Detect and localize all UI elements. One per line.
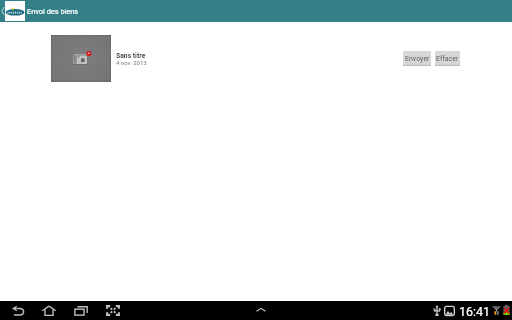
- staticText: Sans titre: [116, 52, 146, 60]
- staticText: Envoi des biens: [27, 7, 79, 16]
- button[interactable]: Back: [10, 301, 28, 320]
- staticText: Envoyer: [405, 55, 430, 63]
- button[interactable]: Envoyer: [403, 51, 431, 66]
- button[interactable]: Expand: [254, 305, 268, 315]
- button[interactable]: Back: [1, 7, 5, 15]
- button[interactable]: Exit full screen: [104, 301, 122, 320]
- button[interactable]: Effacer: [435, 51, 460, 66]
- button[interactable]: Home: [40, 301, 58, 320]
- staticText: 16:41: [459, 304, 491, 319]
- button[interactable]: [51, 35, 111, 82]
- button[interactable]: [5, 1, 25, 21]
- staticText: Effacer: [436, 55, 459, 63]
- staticText: 4 nov. 2013: [116, 59, 147, 66]
- button[interactable]: Recent apps: [72, 301, 90, 320]
